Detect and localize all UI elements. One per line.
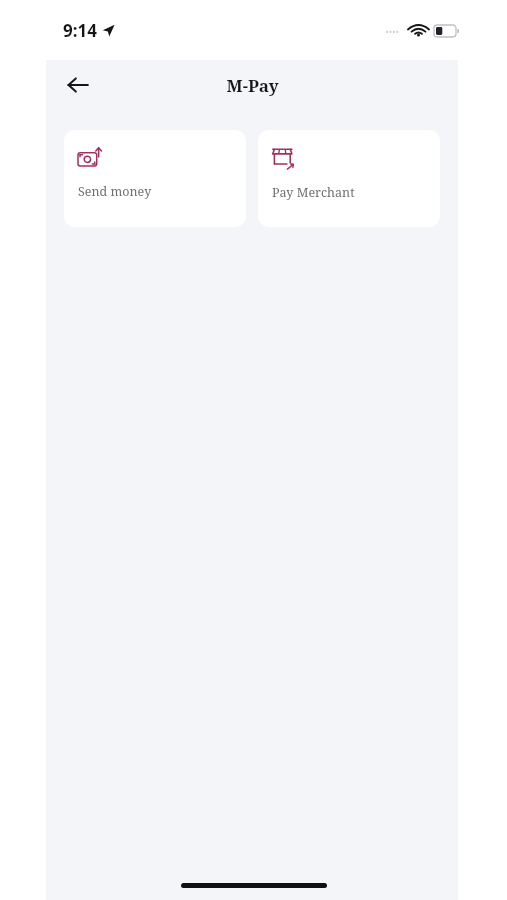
- button[interactable]: Back: [58, 65, 98, 105]
- staticText: Pay Merchant: [272, 184, 355, 201]
- button[interactable]: Pay Merchant: [258, 130, 440, 227]
- button[interactable]: Send money: [64, 130, 246, 227]
- staticText: 9:14: [63, 19, 97, 42]
- staticText: M-Pay: [226, 74, 279, 97]
- staticText: Send money: [78, 183, 152, 200]
